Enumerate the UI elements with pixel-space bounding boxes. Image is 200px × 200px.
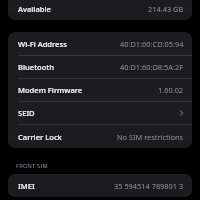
button[interactable]: Wi-Fi Address: [8, 32, 192, 55]
staticText: SEID: [18, 108, 35, 118]
staticText: Available: [18, 4, 51, 14]
staticText: 40:D1:60:CD:05:94: [120, 39, 184, 49]
staticText: Wi-Fi Address: [18, 39, 67, 49]
button[interactable]: Bluetooth: [8, 56, 192, 78]
staticText: Carrier Lock: [18, 132, 62, 142]
staticText: No SIM restrictions: [117, 132, 184, 142]
button[interactable]: Carrier Lock: [8, 125, 192, 148]
button[interactable]: SEID: [8, 102, 192, 124]
staticText: 40:D1:60:D8:5A:2F: [120, 62, 184, 72]
button[interactable]: IMEI: [8, 174, 192, 197]
staticText: 214.43 GB: [148, 4, 184, 14]
staticText: 35 594514 789801 3: [114, 181, 184, 191]
staticText: Bluetooth: [18, 62, 54, 72]
button[interactable]: Modem Firmware: [8, 79, 192, 101]
staticText: IMEI: [18, 181, 35, 191]
button[interactable]: Available: [8, 0, 192, 20]
staticText: Modem Firmware: [18, 85, 83, 95]
staticText: 1.60.02: [158, 85, 184, 95]
other: Open: [179, 109, 184, 117]
staticText: FRONT SIM: [16, 162, 48, 170]
